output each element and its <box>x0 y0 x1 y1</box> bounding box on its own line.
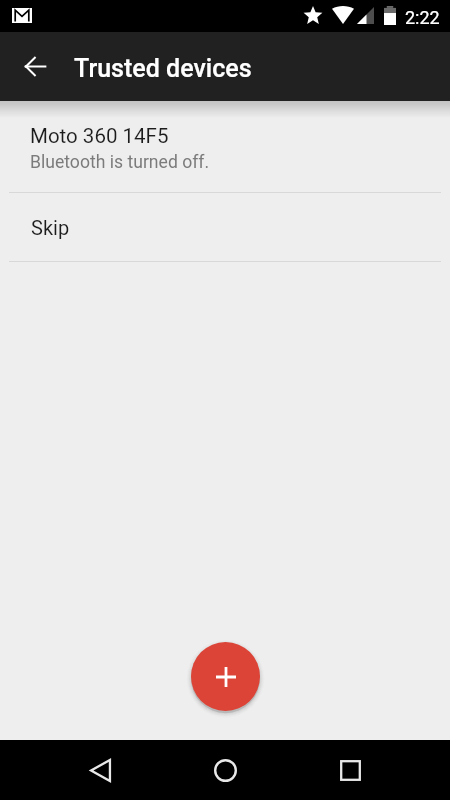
button[interactable]: Recent apps <box>320 740 380 800</box>
staticText: 2:22 <box>405 7 440 28</box>
button[interactable]: Navigate up <box>14 45 56 87</box>
staticText: Trusted devices <box>74 54 252 83</box>
button[interactable]: Skip <box>0 193 450 261</box>
staticText: Moto 360 14F5 <box>30 124 169 148</box>
button[interactable]: Back <box>70 740 130 800</box>
button[interactable]: Add trusted device <box>191 642 260 711</box>
button[interactable]: Moto 360 14F5 <box>0 101 450 192</box>
staticText: Bluetooth is turned off. <box>30 152 210 173</box>
staticText: Skip <box>31 216 70 239</box>
button[interactable]: Home <box>195 740 255 800</box>
